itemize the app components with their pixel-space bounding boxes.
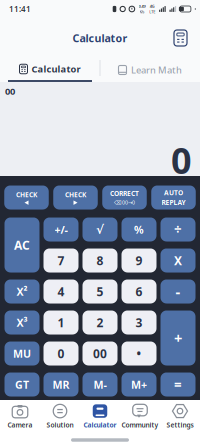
button[interactable]: Calculator — [0, 48, 100, 82]
staticText: CORRECT — [110, 189, 139, 198]
staticText: Camera — [7, 421, 32, 429]
staticText: REPLAY — [161, 198, 185, 207]
button[interactable]: X — [160, 248, 195, 272]
button[interactable]: 8 — [82, 248, 117, 272]
staticText: 1 — [57, 314, 64, 330]
button[interactable]: Learn Math — [100, 48, 200, 82]
staticText: % — [134, 222, 144, 237]
staticText: 3 — [135, 314, 142, 330]
staticText: GT — [15, 377, 29, 392]
staticText: Calculator — [31, 63, 80, 75]
staticText: Learn Math — [131, 64, 182, 76]
staticText: 7 — [57, 252, 64, 268]
staticText: 00 — [93, 345, 107, 361]
staticText: - — [175, 282, 180, 301]
button[interactable]: ÷ — [160, 217, 195, 241]
staticText: 8 — [96, 252, 103, 268]
button[interactable]: X³ — [4, 310, 39, 334]
button[interactable]: 6 — [121, 279, 156, 303]
staticText: X — [174, 252, 182, 268]
button[interactable]: - — [160, 279, 195, 303]
button[interactable]: 5 — [82, 279, 117, 303]
button[interactable]: Solution — [40, 403, 80, 430]
staticText: 0 — [171, 136, 192, 184]
button[interactable]: Settings — [160, 403, 200, 430]
staticText: +/- — [54, 222, 67, 237]
staticText: LTE — [149, 9, 155, 14]
button[interactable]: MR — [43, 372, 78, 396]
button[interactable]: 7 — [43, 248, 78, 272]
staticText: X³ — [16, 315, 27, 330]
staticText: • — [136, 345, 141, 361]
staticText: CHECK — [65, 190, 86, 199]
button[interactable]: % — [121, 217, 156, 241]
staticText: 4G — [150, 3, 155, 9]
button[interactable]: X² — [4, 279, 39, 303]
button[interactable]: 0 — [43, 341, 78, 365]
staticText: Calculator — [72, 31, 127, 45]
button[interactable]: CORRECT — [102, 185, 147, 209]
button[interactable]: M- — [82, 372, 117, 396]
staticText: Calculator — [83, 421, 116, 429]
staticText: MR — [52, 377, 69, 392]
button[interactable]: Calculator — [80, 403, 120, 430]
staticText: 6 — [135, 283, 142, 299]
staticText: M- — [93, 377, 106, 392]
button[interactable]: + — [160, 310, 195, 365]
button[interactable]: 1 — [43, 310, 78, 334]
staticText: Solution — [46, 421, 73, 429]
staticText: AUTO — [164, 188, 183, 197]
staticText: ÷ — [174, 221, 182, 238]
button[interactable]: GT — [4, 372, 39, 396]
button[interactable]: = — [160, 372, 195, 396]
staticText: 00 — [5, 85, 15, 97]
staticText: AC — [14, 237, 30, 253]
staticText: 9 — [135, 252, 142, 268]
button[interactable]: +/- — [43, 217, 78, 241]
button[interactable]: Community — [120, 403, 160, 430]
staticText: + — [174, 328, 182, 348]
button[interactable]: 9 — [121, 248, 156, 272]
staticText: 4 — [57, 283, 64, 299]
staticText: = — [174, 376, 182, 393]
button[interactable]: CHECK — [4, 185, 49, 209]
staticText: MU — [13, 346, 31, 361]
button[interactable]: 2 — [82, 310, 117, 334]
button[interactable]: MU — [4, 341, 39, 365]
button[interactable]: 00 — [82, 341, 117, 365]
staticText: 11:41 — [9, 4, 31, 14]
button[interactable]: • — [121, 341, 156, 365]
staticText: Settings — [166, 421, 193, 429]
staticText: 5 — [96, 283, 103, 299]
staticText: K/s — [139, 9, 144, 14]
button[interactable]: AC — [4, 217, 39, 272]
button[interactable]: √ — [82, 217, 117, 241]
button[interactable]: CHECK — [53, 185, 98, 209]
staticText: M+ — [131, 377, 147, 392]
button[interactable]: Camera — [0, 403, 40, 430]
button[interactable]: M+ — [121, 372, 156, 396]
staticText: X² — [16, 284, 27, 299]
staticText: Community — [121, 421, 158, 429]
staticText: ⌫00→0 — [114, 199, 135, 206]
staticText: 0.49 — [138, 3, 145, 9]
button[interactable]: AUTO — [151, 185, 196, 209]
staticText: CHECK — [16, 190, 37, 199]
staticText: 0 — [57, 345, 64, 361]
staticText: √ — [96, 223, 104, 236]
button[interactable]: 3 — [121, 310, 156, 334]
staticText: 2 — [96, 314, 103, 330]
button[interactable]: 4 — [43, 279, 78, 303]
button[interactable]: Calculator themes — [174, 25, 187, 41]
